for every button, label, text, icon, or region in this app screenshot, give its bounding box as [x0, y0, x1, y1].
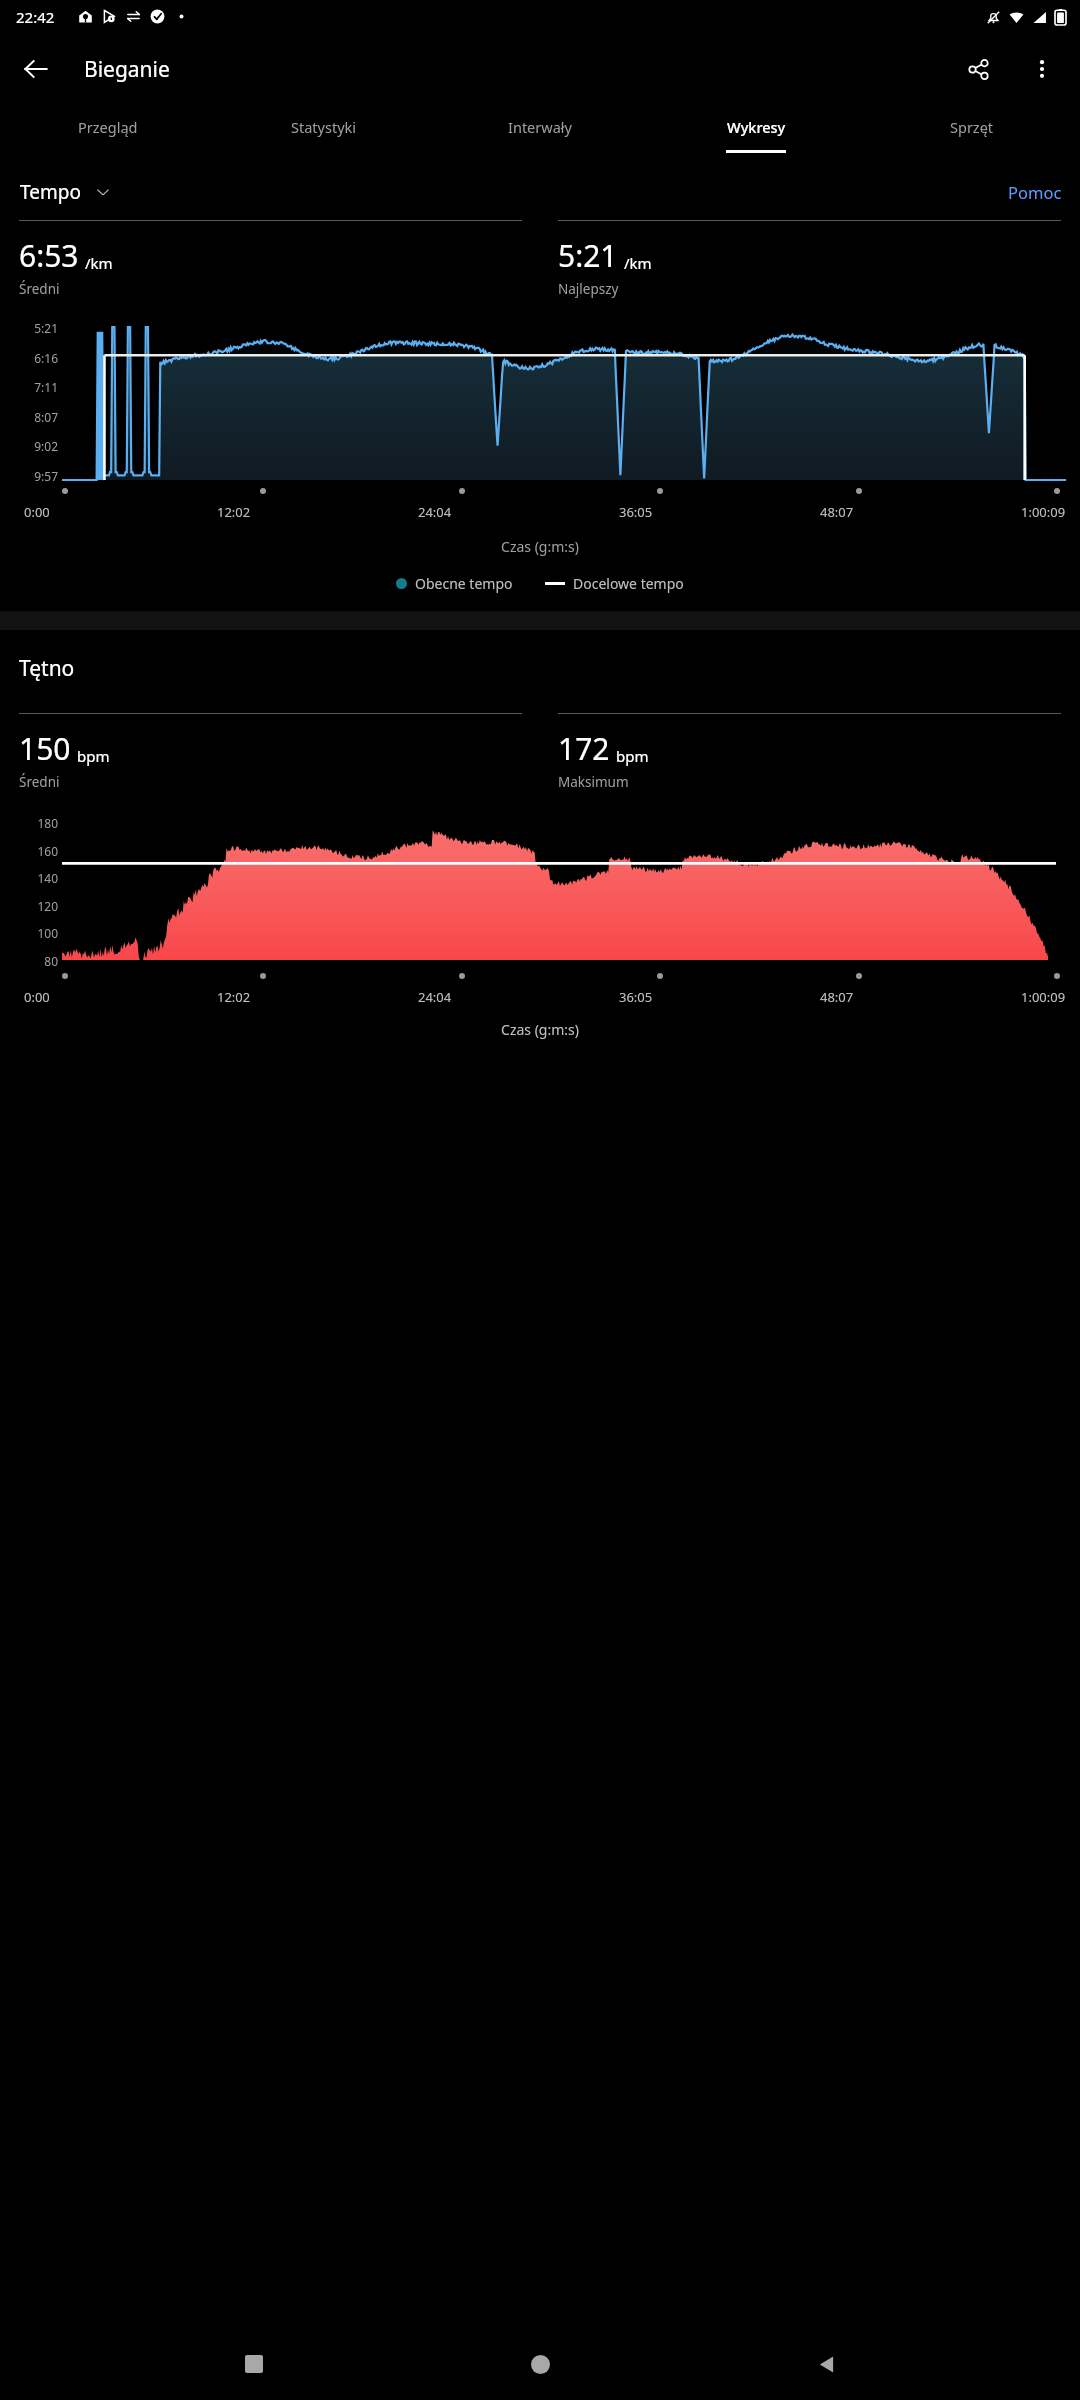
staticText: 140 — [14, 870, 58, 884]
staticText: Tempo — [20, 179, 81, 205]
staticText: 80 — [14, 953, 58, 967]
button[interactable]: Back — [10, 43, 62, 95]
staticText: 7:11 — [14, 379, 58, 393]
staticText: Sprzęt — [950, 117, 994, 137]
button[interactable]: Share — [952, 43, 1004, 95]
staticText: 0:00 — [24, 988, 50, 1006]
staticText: 9:57 — [14, 468, 58, 482]
button[interactable]: Recent apps — [222, 2332, 286, 2396]
staticText: 24:04 — [418, 503, 452, 521]
staticText: Średni — [19, 773, 60, 791]
staticText: 180 — [14, 815, 58, 829]
staticText: bpm — [77, 746, 110, 766]
staticText: 5:21 — [14, 320, 58, 334]
staticText: 6:16 — [14, 350, 58, 364]
staticText: 0:00 — [24, 503, 50, 521]
staticText: 1:00:09 — [1021, 988, 1066, 1006]
button[interactable]: Interwały — [432, 105, 648, 164]
staticText: Czas (g:m:s) — [0, 537, 1080, 556]
staticText: 9:02 — [14, 438, 58, 452]
staticText: 100 — [14, 925, 58, 939]
button[interactable]: Tempo — [14, 175, 117, 209]
staticText: 48:07 — [820, 988, 854, 1006]
staticText: Przegląd — [78, 117, 138, 137]
button[interactable]: Back — [794, 2332, 858, 2396]
button[interactable]: More options — [1016, 43, 1068, 95]
button[interactable]: Sprzęt — [864, 105, 1080, 164]
staticText: /km — [624, 253, 652, 273]
staticText: 5:21 — [558, 235, 618, 276]
staticText: Maksimum — [558, 773, 629, 791]
staticText: 160 — [14, 843, 58, 857]
staticText: Statystyki — [291, 117, 357, 137]
staticText: /km — [85, 253, 113, 273]
staticText: Czas (g:m:s) — [0, 1020, 1080, 1039]
staticText: 6:53 — [19, 235, 79, 276]
staticText: Tętno — [19, 654, 75, 683]
staticText: 172 — [558, 728, 610, 769]
staticText: 48:07 — [820, 503, 854, 521]
button[interactable]: Statystyki — [216, 105, 432, 164]
staticText: Obecne tempo — [415, 574, 513, 593]
staticText: Bieganie — [84, 55, 170, 84]
staticText: Pomoc — [1008, 181, 1062, 203]
staticText: 150 — [19, 728, 71, 769]
staticText: 120 — [14, 898, 58, 912]
staticText: 12:02 — [217, 503, 251, 521]
staticText: 8:07 — [14, 409, 58, 423]
staticText: 36:05 — [619, 988, 653, 1006]
staticText: 36:05 — [619, 503, 653, 521]
staticText: bpm — [616, 746, 649, 766]
button[interactable]: Przegląd — [0, 105, 216, 164]
staticText: 24:04 — [418, 988, 452, 1006]
staticText: Wykresy — [727, 117, 786, 137]
button[interactable]: Home — [508, 2332, 572, 2396]
staticText: Interwały — [508, 117, 572, 137]
staticText: Najlepszy — [558, 280, 619, 298]
staticText: 22:42 — [16, 7, 55, 27]
staticText: Docelowe tempo — [573, 574, 684, 593]
staticText: 1:00:09 — [1021, 503, 1066, 521]
button[interactable]: Wykresy — [648, 105, 864, 164]
staticText: Średni — [19, 280, 60, 298]
button[interactable]: Pomoc — [1000, 175, 1070, 209]
staticText: 12:02 — [217, 988, 251, 1006]
